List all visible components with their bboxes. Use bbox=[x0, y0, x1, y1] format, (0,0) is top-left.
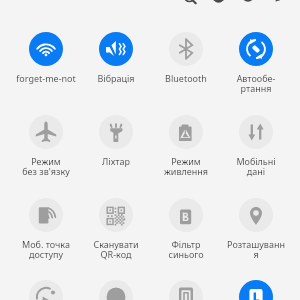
button[interactable]: Power bbox=[237, 0, 259, 11]
staticText: Вібрація bbox=[81, 72, 151, 84]
button[interactable]: Screen lock bbox=[221, 276, 291, 300]
staticText: Режим без зв'язку bbox=[11, 155, 81, 177]
button[interactable]: Search bbox=[181, 0, 203, 11]
button[interactable]: NFC bbox=[151, 276, 221, 300]
button[interactable]: Media bbox=[11, 276, 81, 300]
staticText: Сканувати QR-код bbox=[81, 238, 151, 260]
staticText: forget-me-not bbox=[11, 72, 81, 84]
staticText: Автообе- ртання bbox=[221, 72, 291, 94]
button[interactable]: Bluetooth bbox=[151, 28, 221, 94]
button[interactable]: Edit bbox=[267, 0, 289, 11]
staticText: Ліхтар bbox=[81, 155, 151, 167]
button[interactable]: Vibrate bbox=[81, 28, 151, 94]
button[interactable]: Location bbox=[221, 194, 291, 260]
staticText: Розташуванн я bbox=[221, 238, 291, 260]
staticText: Мобільні дані bbox=[221, 155, 291, 177]
button[interactable]: Power saving mode bbox=[151, 111, 221, 177]
button[interactable]: Settings bbox=[208, 0, 230, 11]
button[interactable]: Blue light filter bbox=[151, 194, 221, 260]
button[interactable]: Mobile data bbox=[221, 111, 291, 177]
staticText: Фільтр синього bbox=[151, 238, 221, 260]
button[interactable]: Scan QR code bbox=[81, 194, 151, 260]
staticText: Режим живлення bbox=[151, 155, 221, 177]
button[interactable]: Auto rotate bbox=[221, 28, 291, 94]
staticText: Bluetooth bbox=[151, 72, 221, 84]
button[interactable]: Wi-Fi bbox=[11, 28, 81, 94]
staticText: Моб. точка доступу bbox=[11, 238, 81, 260]
button[interactable]: Torch bbox=[81, 111, 151, 177]
button[interactable]: Airplane mode bbox=[11, 111, 81, 177]
button[interactable]: Do not disturb bbox=[81, 276, 151, 300]
button[interactable]: Mobile hotspot bbox=[11, 194, 81, 260]
